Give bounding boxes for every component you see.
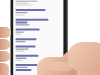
- button[interactable]: Phone in hand showing search results: [0, 0, 100, 75]
